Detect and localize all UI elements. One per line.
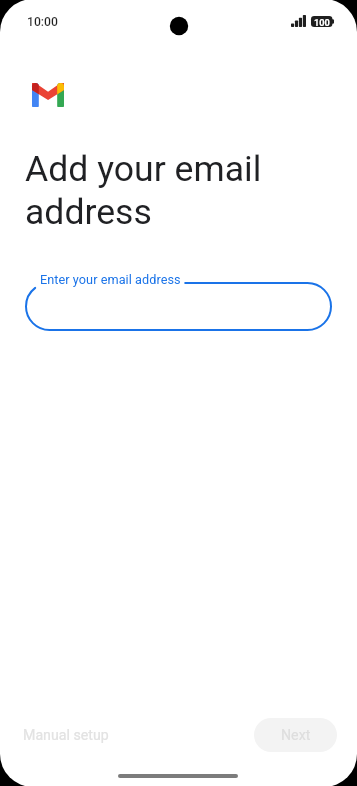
staticText: Next — [281, 727, 311, 744]
button[interactable]: Enter your email address — [25, 282, 332, 331]
button[interactable]: Next — [254, 718, 337, 752]
staticText: Manual setup — [23, 727, 109, 744]
staticText: Add your email address — [25, 148, 262, 232]
staticText: 10:00 — [27, 15, 58, 29]
button[interactable]: Manual setup — [13, 719, 119, 752]
staticText: 100 — [314, 17, 330, 28]
staticText: Enter your email address — [40, 272, 181, 287]
